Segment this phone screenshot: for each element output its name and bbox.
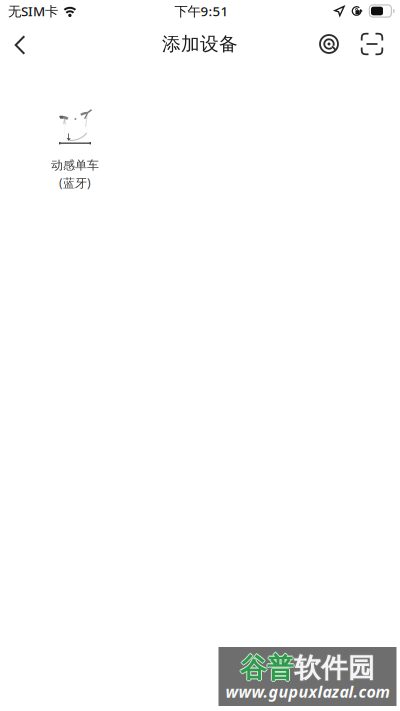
staticText: 动感单车 — [51, 158, 99, 173]
staticText: 谷普 — [241, 652, 295, 684]
staticText: 软件园 — [294, 652, 375, 684]
staticText: www.gupuxlazal.com — [225, 681, 389, 702]
staticText: 谷普 — [240, 653, 294, 685]
staticText: 下午9:51 — [175, 2, 229, 20]
staticText: 谷普 — [239, 652, 293, 684]
staticText: 无SIM卡 — [8, 2, 58, 20]
button[interactable]: 返回 — [0, 22, 40, 66]
staticText: (蓝牙) — [59, 175, 91, 191]
staticText: 软件园 — [294, 650, 375, 683]
button[interactable]: 扫一扫 — [351, 22, 393, 66]
staticText: 软件园 — [293, 652, 374, 684]
staticText: 谷普 — [240, 650, 294, 683]
staticText: 软件园 — [295, 652, 376, 684]
button[interactable]: 配对设备 — [308, 22, 350, 66]
staticText: 软件园 — [294, 653, 375, 685]
staticText: 谷普 — [240, 652, 294, 684]
button[interactable]: 动感单车 — [37, 109, 113, 191]
staticText: 添加设备 — [162, 32, 238, 55]
